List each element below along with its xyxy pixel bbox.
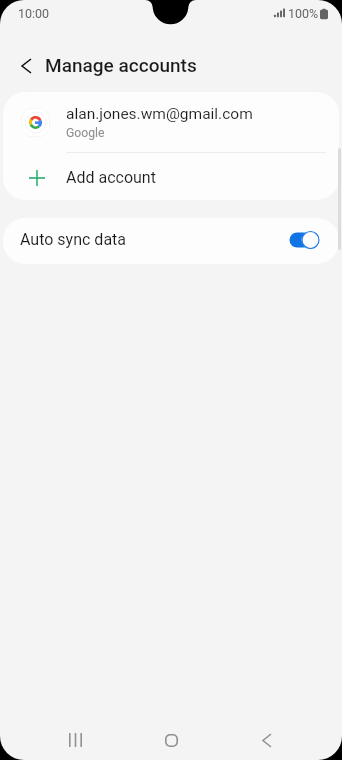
staticText: 100% bbox=[288, 6, 319, 21]
staticText: Auto sync data bbox=[20, 230, 127, 249]
button[interactable]: alan.jones.wm@gmail.com bbox=[3, 92, 339, 152]
staticText: alan.jones.wm@gmail.com bbox=[66, 105, 253, 123]
button[interactable]: Add account bbox=[3, 152, 339, 200]
staticText: 10:00 bbox=[18, 6, 50, 21]
button[interactable]: Auto sync data bbox=[3, 218, 339, 264]
button[interactable]: Navigate up bbox=[3, 43, 49, 89]
staticText: Google bbox=[66, 126, 105, 140]
button[interactable]: Recent apps bbox=[51, 716, 99, 760]
button[interactable]: Back bbox=[243, 716, 291, 760]
other: Auto sync data toggle bbox=[286, 229, 320, 251]
staticText: Add account bbox=[66, 168, 156, 187]
button[interactable]: Home bbox=[147, 716, 195, 760]
staticText: Manage accounts bbox=[45, 54, 197, 76]
